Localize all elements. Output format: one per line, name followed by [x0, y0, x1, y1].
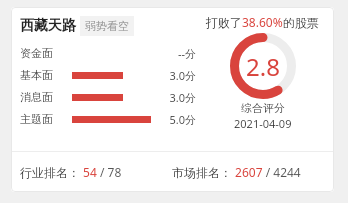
staticText: 基本面	[20, 68, 64, 82]
staticText: 2.8	[246, 50, 280, 83]
staticText: 市场排名： 2607 / 4244	[172, 164, 301, 180]
staticText: 行业排名： 54 / 78	[20, 164, 122, 180]
staticText: 综合评分	[241, 101, 285, 115]
staticText: 打败了38.60%的股票	[206, 14, 319, 30]
staticText: 消息面	[20, 90, 64, 104]
button[interactable]: 市场排名： 2607 / 4244	[172, 164, 325, 180]
button[interactable]: 行业排名： 54 / 78	[20, 164, 172, 180]
staticText: 3.0分	[158, 68, 196, 83]
staticText: 2021-04-09	[234, 116, 292, 131]
button[interactable]: 西藏天路	[20, 16, 134, 36]
staticText: 资金面	[20, 46, 64, 60]
button[interactable]: 消息面	[20, 86, 196, 108]
staticText: 5.0分	[158, 112, 196, 127]
staticText: 主题面	[20, 112, 64, 126]
staticText: 3.0分	[158, 90, 196, 105]
button[interactable]: 主题面	[20, 108, 196, 130]
button[interactable]: 资金面	[20, 42, 196, 64]
staticText: --分	[158, 46, 196, 61]
staticText: 弱势看空	[85, 19, 129, 33]
staticText: 西藏天路	[20, 17, 76, 35]
button[interactable]: 基本面	[20, 64, 196, 86]
